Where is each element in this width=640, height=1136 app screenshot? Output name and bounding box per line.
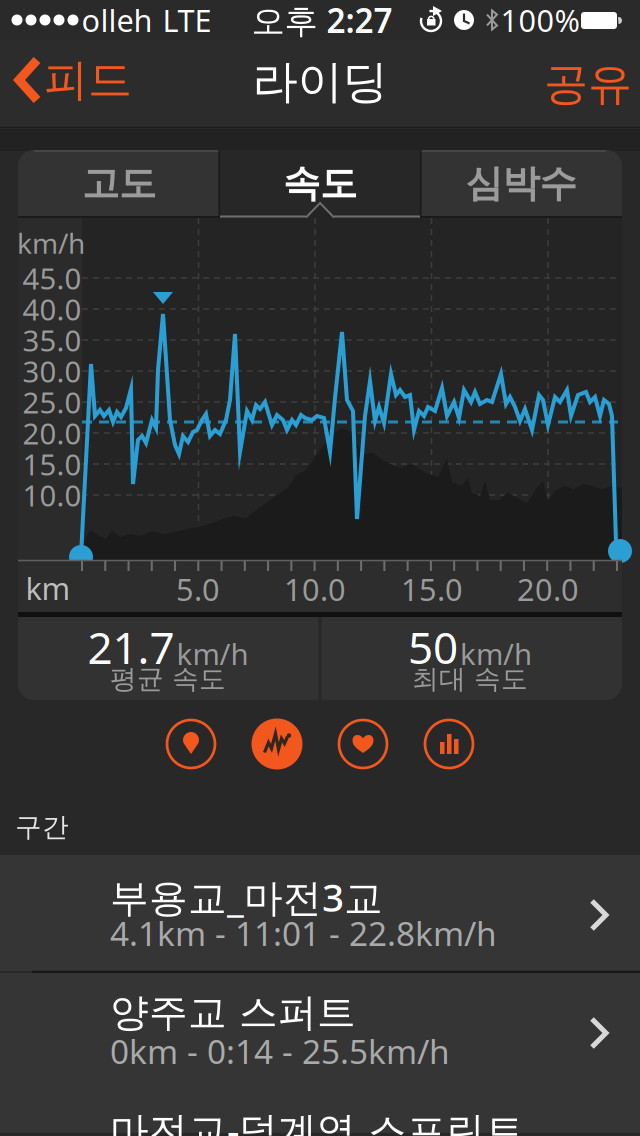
staticText: 오후 2:27 — [251, 0, 392, 42]
button[interactable]: 피드 — [0, 40, 150, 128]
button[interactable]: 경로 — [167, 720, 215, 768]
staticText: 0km - 0:14 - 25.5km/h — [110, 1029, 450, 1073]
staticText: LTE — [162, 0, 211, 40]
staticText: 15.0 — [401, 569, 463, 609]
staticText: 공유 — [544, 57, 632, 111]
button[interactable]: 심박수 — [339, 720, 387, 768]
staticText: 10.0 — [22, 475, 81, 514]
staticText: 100% — [500, 0, 579, 40]
button[interactable]: 속도 — [251, 718, 302, 769]
staticText: km/h — [176, 634, 248, 673]
staticText: 20.0 — [517, 569, 579, 609]
staticText: 30.0 — [22, 351, 81, 390]
staticText: 25.0 — [22, 382, 81, 421]
staticText: 5.0 — [176, 569, 220, 609]
staticText: 심박수 — [465, 161, 576, 206]
staticText: 속도 — [283, 161, 357, 206]
staticText: 15.0 — [22, 444, 81, 483]
staticText: 45.0 — [22, 258, 81, 297]
button[interactable]: 심박수 — [420, 150, 621, 217]
staticText: 구간 — [15, 811, 69, 843]
staticText: 21.7 — [87, 618, 174, 676]
staticText: 부용교_마전3교 — [110, 871, 383, 922]
button[interactable]: 고도 — [18, 150, 219, 217]
staticText: 10.0 — [284, 569, 346, 609]
staticText: 피드 — [44, 53, 132, 107]
staticText: 마전교-덕계역 스프린트 — [110, 1104, 524, 1136]
button[interactable]: 공유 — [538, 40, 638, 128]
staticText: km/h — [17, 224, 85, 262]
staticText: 50 — [408, 618, 458, 676]
staticText: km — [25, 568, 70, 608]
staticText: 고도 — [82, 161, 156, 206]
staticText: olleh — [81, 0, 152, 40]
staticText: 평균 속도 — [110, 663, 226, 695]
staticText: km/h — [460, 634, 532, 673]
staticText: 40.0 — [22, 289, 81, 328]
staticText: 4.1km - 11:01 - 22.8km/h — [110, 911, 497, 955]
button[interactable]: 양주교 스퍼트 — [0, 973, 640, 1089]
button[interactable]: 부용교_마전3교 — [0, 855, 640, 971]
staticText: 라이딩 — [252, 54, 387, 110]
staticText: 양주교 스퍼트 — [110, 989, 356, 1036]
button[interactable]: 마전교-덕계역 스프린트 — [0, 1091, 640, 1136]
staticText: 20.0 — [22, 413, 81, 452]
button[interactable]: 통계 — [425, 720, 473, 768]
button[interactable]: 속도 — [220, 150, 419, 217]
staticText: 최대 속도 — [412, 663, 528, 695]
staticText: 35.0 — [22, 320, 81, 359]
